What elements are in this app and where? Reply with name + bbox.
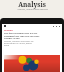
staticText: OPINION xyxy=(4,29,13,32)
staticText: Analysis xyxy=(18,0,46,9)
staticText: The great rebuild: how we are remaking o… xyxy=(4,32,43,39)
staticText: Articles, opinion and analysis xyxy=(17,8,48,11)
staticText: Housing, transport and energy are being … xyxy=(4,40,35,46)
